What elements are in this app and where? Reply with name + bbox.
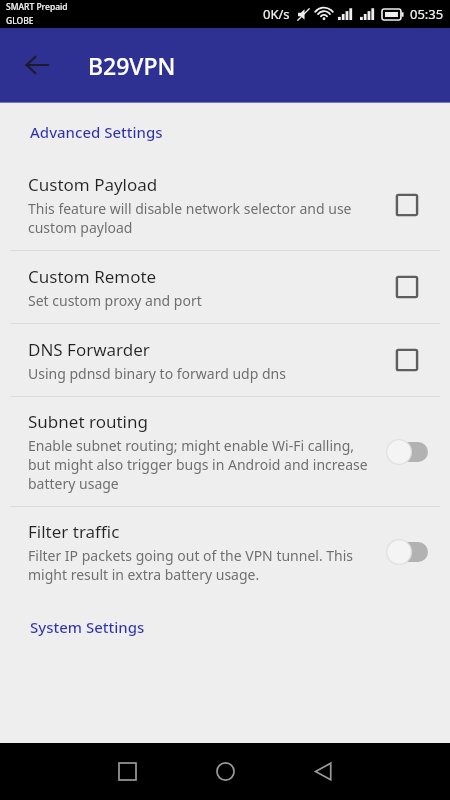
button[interactable]: Subnet routing bbox=[0, 397, 450, 506]
button[interactable]: Filter traffic bbox=[0, 507, 450, 597]
staticText: Filter IP packets going out of the VPN t… bbox=[28, 546, 370, 584]
button[interactable]: Custom Payload bbox=[0, 160, 450, 250]
staticText: Enable subnet routing; might enable Wi-F… bbox=[28, 436, 370, 493]
staticText: 0K/s bbox=[263, 5, 290, 23]
button[interactable]: Toggle setting bbox=[386, 439, 428, 465]
staticText: Subnet routing bbox=[28, 410, 148, 433]
button[interactable]: Toggle option bbox=[395, 275, 419, 299]
staticText: GLOBE bbox=[6, 15, 34, 27]
button[interactable]: DNS Forwarder bbox=[0, 324, 450, 396]
staticText: B29VPN bbox=[88, 50, 176, 81]
staticText: Advanced Settings bbox=[30, 122, 163, 142]
staticText: Custom Payload bbox=[28, 173, 158, 196]
button[interactable]: System Settings bbox=[30, 617, 145, 637]
button[interactable]: Custom Remote bbox=[0, 251, 450, 323]
button[interactable]: Toggle option bbox=[395, 348, 419, 372]
button[interactable]: Toggle option bbox=[395, 193, 419, 217]
staticText: Custom Remote bbox=[28, 265, 157, 288]
staticText: DNS Forwarder bbox=[28, 338, 150, 361]
button[interactable]: Toggle setting bbox=[386, 539, 428, 565]
staticText: 05:35 bbox=[410, 5, 444, 23]
button[interactable]: Back bbox=[12, 40, 62, 90]
button[interactable]: Back bbox=[292, 743, 354, 800]
staticText: SMART Prepaid bbox=[6, 1, 68, 13]
button[interactable]: Recent apps bbox=[96, 743, 158, 800]
button[interactable]: Home bbox=[194, 743, 256, 800]
staticText: This feature will disable network select… bbox=[28, 199, 370, 237]
staticText: Set custom proxy and port bbox=[28, 291, 202, 310]
staticText: System Settings bbox=[30, 617, 145, 637]
staticText: Using pdnsd binary to forward udp dns bbox=[28, 364, 286, 383]
staticText: Filter traffic bbox=[28, 520, 120, 543]
button[interactable]: Advanced Settings bbox=[30, 122, 163, 142]
